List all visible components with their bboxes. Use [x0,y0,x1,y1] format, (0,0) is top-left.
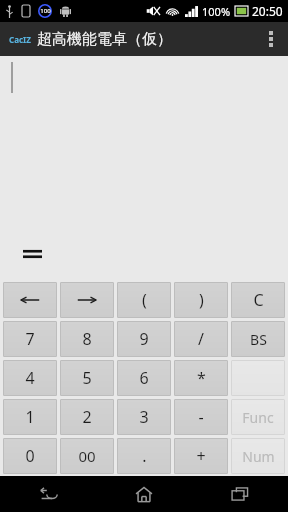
staticText: . [142,445,147,467]
staticText: 3 [139,406,149,428]
staticText: 4 [25,367,35,389]
staticText: 8 [82,328,92,350]
button[interactable]: 1 [3,399,57,435]
staticText: ( [142,289,147,311]
staticText: + [196,445,206,467]
staticText: Func [242,408,274,427]
staticText: BS [250,330,267,349]
staticText: 7 [25,328,35,350]
staticText: 6 [139,367,149,389]
staticText: ) [199,289,204,311]
button[interactable]: * [174,360,228,396]
button[interactable]: Back [0,476,96,512]
button[interactable]: 7 [3,321,57,357]
staticText: Num [242,447,275,466]
staticText: / [198,328,204,350]
button[interactable]: . [117,438,171,474]
button[interactable]: 5 [60,360,114,396]
button[interactable]: - [174,399,228,435]
button[interactable]: 6 [117,360,171,396]
staticText: C [253,289,264,311]
button[interactable]: 9 [117,321,171,357]
button[interactable]: 3 [117,399,171,435]
staticText: 100% [202,4,231,19]
staticText: 5 [82,367,92,389]
button[interactable]: ( [117,282,171,318]
staticText: 2 [82,406,92,428]
button[interactable]: Move cursor right [60,282,114,318]
staticText: 1 [25,406,35,428]
button[interactable]: More options [254,22,288,56]
button[interactable]: 00 [60,438,114,474]
staticText: 9 [139,328,149,350]
staticText: CacIZ [9,34,31,45]
button[interactable]: BS [231,321,285,357]
staticText: 00 [78,446,96,466]
staticText: 0 [25,445,35,467]
button[interactable]: C [231,282,285,318]
button[interactable]: Func [231,399,285,435]
staticText: 超高機能電卓（仮） [37,30,172,49]
staticText: * [197,367,206,389]
staticText: - [198,406,204,428]
button[interactable]: 2 [60,399,114,435]
button[interactable]: Move cursor left [3,282,57,318]
button[interactable]: 4 [3,360,57,396]
button[interactable]: Num [231,438,285,474]
button[interactable]: ) [174,282,228,318]
staticText: 20:50 [252,3,283,19]
button[interactable]: Home [96,476,192,512]
button[interactable]: 8 [60,321,114,357]
staticText: 100 [40,7,51,15]
button[interactable] [231,360,285,396]
button[interactable]: / [174,321,228,357]
button[interactable]: Recents [192,476,288,512]
button[interactable]: 0 [3,438,57,474]
button[interactable]: + [174,438,228,474]
